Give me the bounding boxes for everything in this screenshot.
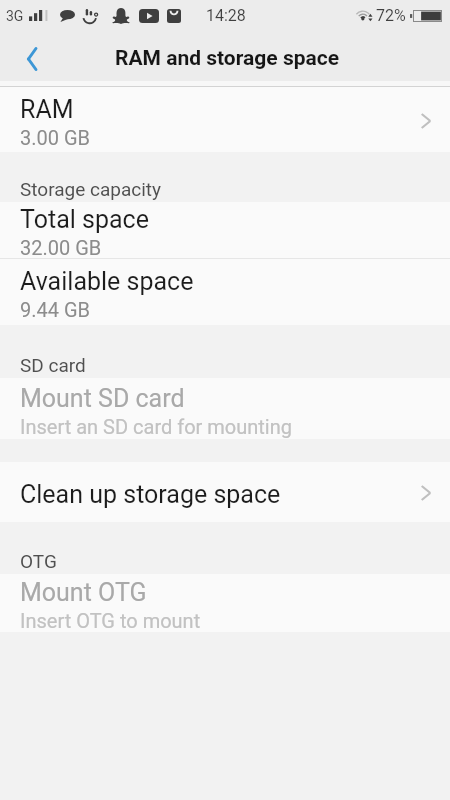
staticText: 9.44 GB (20, 298, 91, 321)
button[interactable]: RAM (0, 87, 450, 152)
staticText: OTG (20, 550, 57, 572)
staticText: Available space (20, 267, 194, 296)
staticText: Insert OTG to mount (20, 609, 201, 632)
staticText: RAM (20, 95, 74, 124)
staticText: Mount OTG (20, 578, 147, 607)
button[interactable]: Available space (0, 259, 450, 325)
button[interactable]: Total space (0, 202, 450, 258)
staticText: SD card (20, 354, 86, 376)
button[interactable]: Mount SD card (0, 378, 450, 439)
button[interactable]: Mount OTG (0, 574, 450, 632)
staticText: Storage capacity (20, 178, 162, 200)
staticText: Clean up storage space (20, 480, 281, 509)
staticText: 72% (376, 6, 406, 25)
staticText: Total space (20, 205, 149, 234)
staticText: 3.00 GB (20, 126, 91, 149)
staticText: Insert an SD card for mounting (20, 415, 293, 438)
staticText: Mount SD card (20, 384, 185, 413)
staticText: 14:28 (206, 6, 246, 25)
button[interactable]: Clean up storage space (0, 462, 450, 522)
button[interactable]: Back (10, 35, 52, 77)
staticText: 3G (6, 8, 24, 24)
staticText: 32.00 GB (20, 236, 102, 259)
staticText: RAM and storage space (115, 46, 340, 71)
